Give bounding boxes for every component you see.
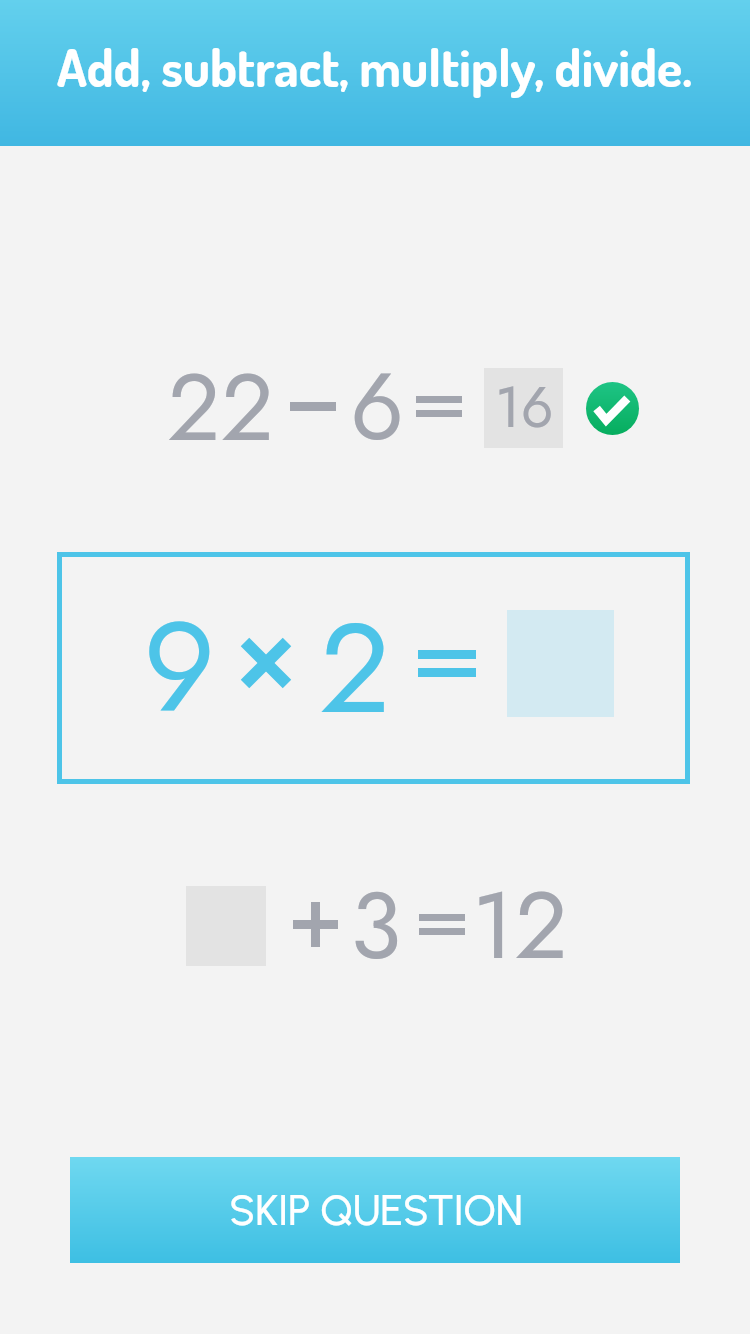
staticText: 2 bbox=[319, 577, 391, 759]
staticText: 12 bbox=[472, 857, 568, 993]
other: Correct bbox=[586, 382, 639, 435]
staticText: 3 bbox=[350, 857, 402, 993]
button[interactable] bbox=[57, 552, 690, 784]
staticText: 9 bbox=[143, 576, 216, 758]
button[interactable]: SKIP QUESTION bbox=[70, 1157, 680, 1263]
staticText: Add, subtract, multiply, divide. bbox=[57, 34, 693, 100]
staticText: 16 bbox=[495, 366, 554, 448]
staticText: 22 bbox=[167, 339, 274, 475]
staticText: SKIP QUESTION bbox=[229, 1185, 523, 1235]
staticText: 6 bbox=[350, 338, 405, 474]
